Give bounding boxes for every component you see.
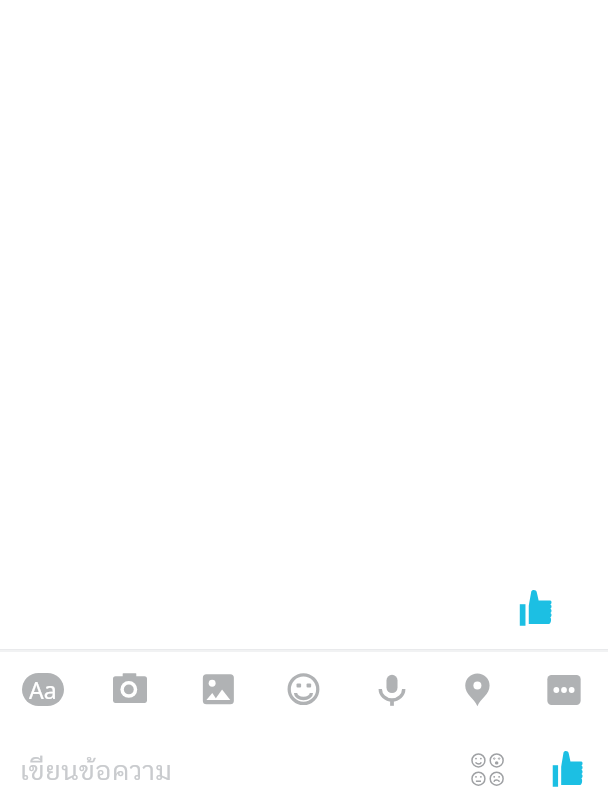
button[interactable]: เขียนข้อความ — [0, 730, 460, 811]
staticText: เขียนข้อความ — [20, 751, 173, 794]
button[interactable]: Camera — [105, 663, 155, 717]
staticText: Aa — [29, 674, 57, 705]
button[interactable]: Emoji — [466, 748, 510, 792]
button[interactable]: Gallery — [194, 663, 244, 717]
button[interactable]: Aa — [22, 673, 64, 706]
button[interactable]: Location — [454, 663, 504, 717]
button[interactable]: More — [539, 663, 589, 717]
button[interactable]: Stickers — [279, 663, 329, 717]
button[interactable]: Send like — [545, 745, 589, 793]
button[interactable]: Like sticker — [508, 581, 563, 635]
button[interactable]: Voice message — [367, 663, 417, 717]
